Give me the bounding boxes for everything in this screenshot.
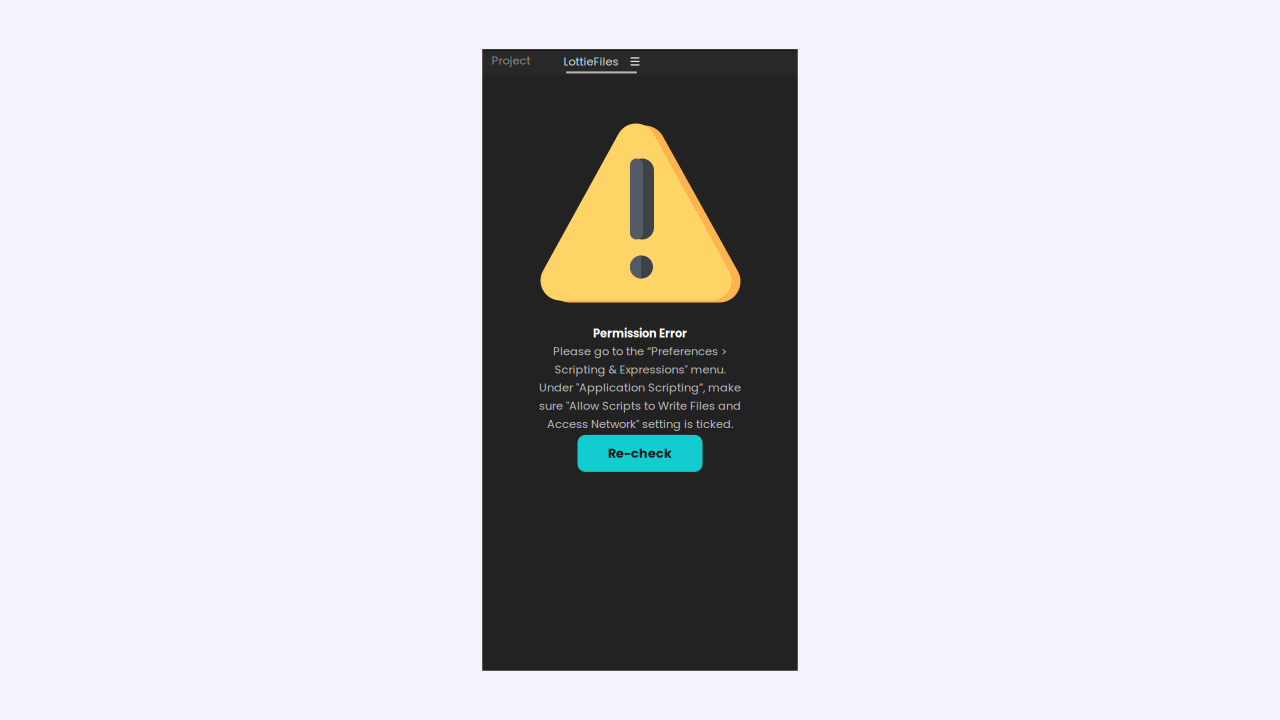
button[interactable]: LottieFiles [561,49,620,71]
staticText: Under "Application Scripting”, make [539,380,741,396]
staticText: Scripting & Expressions" menu. [554,361,725,377]
staticText: Permission Error [593,325,687,341]
staticText: Access Network" setting is ticked. [547,416,733,432]
staticText: LottieFiles [563,53,618,69]
staticText: Re-check [608,444,672,462]
staticText: sure "Allow Scripts to Write Files and [539,398,741,414]
staticText: Please go to the “Preferences > [553,343,727,359]
button[interactable]: Menu [620,53,641,67]
button[interactable]: Project [482,48,539,72]
button[interactable]: Re-check [577,435,702,472]
staticText: Project [491,52,530,68]
